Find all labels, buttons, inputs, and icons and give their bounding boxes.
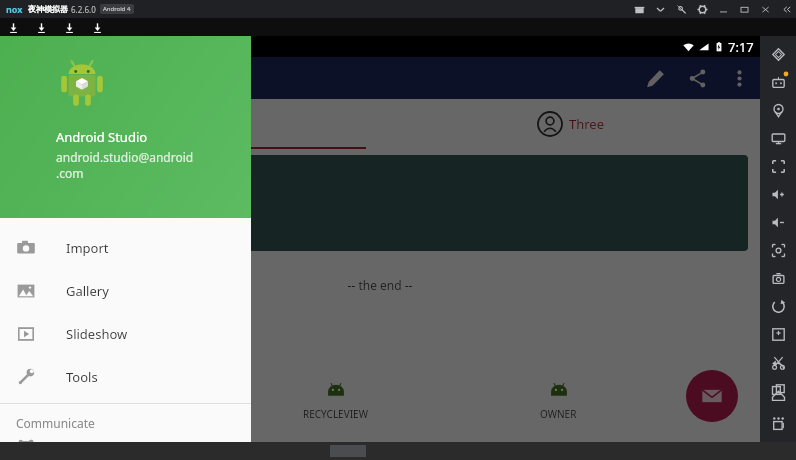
button[interactable]: Maximize bbox=[739, 4, 750, 15]
button[interactable]: Recents bbox=[767, 414, 789, 436]
staticText: nox bbox=[6, 3, 23, 15]
button[interactable]: Screenshot bbox=[767, 239, 789, 261]
staticText: 6.2.6.0 bbox=[71, 4, 96, 15]
button[interactable]: RECYCLEVIEW bbox=[224, 366, 447, 434]
staticText: Gallery bbox=[66, 282, 109, 300]
button[interactable]: Fullscreen bbox=[767, 155, 789, 177]
button[interactable]: Settings bbox=[697, 4, 708, 15]
button[interactable]: Rotate bbox=[767, 295, 789, 317]
staticText: Communicate bbox=[16, 415, 95, 431]
staticText: Slideshow bbox=[66, 325, 128, 343]
button[interactable]: Apps bbox=[767, 71, 789, 93]
staticText: 7:17 bbox=[728, 38, 754, 56]
button[interactable]: Gift bbox=[634, 4, 645, 15]
button[interactable]: Zoom bbox=[767, 323, 789, 345]
staticText: RECYCLEVIEW bbox=[303, 407, 368, 421]
button[interactable]: More bbox=[767, 407, 789, 429]
staticText: .com bbox=[56, 165, 84, 181]
button[interactable]: Multi bbox=[767, 379, 789, 401]
button[interactable]: Gallery bbox=[0, 269, 251, 312]
button[interactable]: Share bbox=[684, 65, 710, 91]
button[interactable]: Download bbox=[35, 21, 48, 34]
staticText: 夜神模拟器 bbox=[28, 4, 68, 14]
button[interactable]: Shake bbox=[767, 43, 789, 65]
staticText: -- the end -- bbox=[0, 277, 760, 293]
button[interactable]: Slideshow bbox=[0, 312, 251, 355]
staticText: Android Studio bbox=[56, 128, 148, 146]
button[interactable]: More options bbox=[726, 65, 752, 91]
staticText: OWNER bbox=[540, 407, 577, 421]
button[interactable]: Minimize bbox=[718, 4, 729, 15]
button[interactable]: Volume up bbox=[767, 183, 789, 205]
button[interactable]: OWNER bbox=[447, 366, 670, 434]
button[interactable]: Pin bbox=[676, 4, 687, 15]
button[interactable]: Close bbox=[760, 4, 771, 15]
button[interactable]: Compose message bbox=[686, 370, 738, 422]
button[interactable]: Edit bbox=[642, 65, 668, 91]
button[interactable]: Two bbox=[0, 99, 380, 149]
button[interactable] bbox=[0, 155, 748, 251]
button[interactable]: Screen bbox=[767, 127, 789, 149]
button[interactable]: Download bbox=[91, 21, 104, 34]
button[interactable]: Download bbox=[63, 21, 76, 34]
button[interactable]: Location bbox=[767, 99, 789, 121]
button[interactable]: Cut bbox=[767, 351, 789, 373]
staticText: android.studio@android bbox=[56, 149, 194, 165]
staticText: Android 4 bbox=[103, 5, 131, 13]
staticText: Import bbox=[66, 239, 109, 257]
button[interactable]: Home bbox=[767, 384, 789, 406]
button[interactable]: Volume down bbox=[767, 211, 789, 233]
button[interactable]: LIBRARY bbox=[0, 366, 224, 434]
button[interactable]: Collapse bbox=[781, 4, 792, 15]
button[interactable]: Back bbox=[767, 354, 789, 376]
button[interactable]: Record bbox=[767, 267, 789, 289]
button[interactable]: Download bbox=[7, 21, 20, 34]
button[interactable]: Tools bbox=[0, 355, 251, 398]
staticText: Three bbox=[569, 115, 605, 133]
staticText: Tools bbox=[66, 368, 98, 386]
button[interactable]: Expand bbox=[655, 4, 666, 15]
button[interactable]: Import bbox=[0, 226, 251, 269]
button[interactable]: Three bbox=[380, 99, 760, 149]
